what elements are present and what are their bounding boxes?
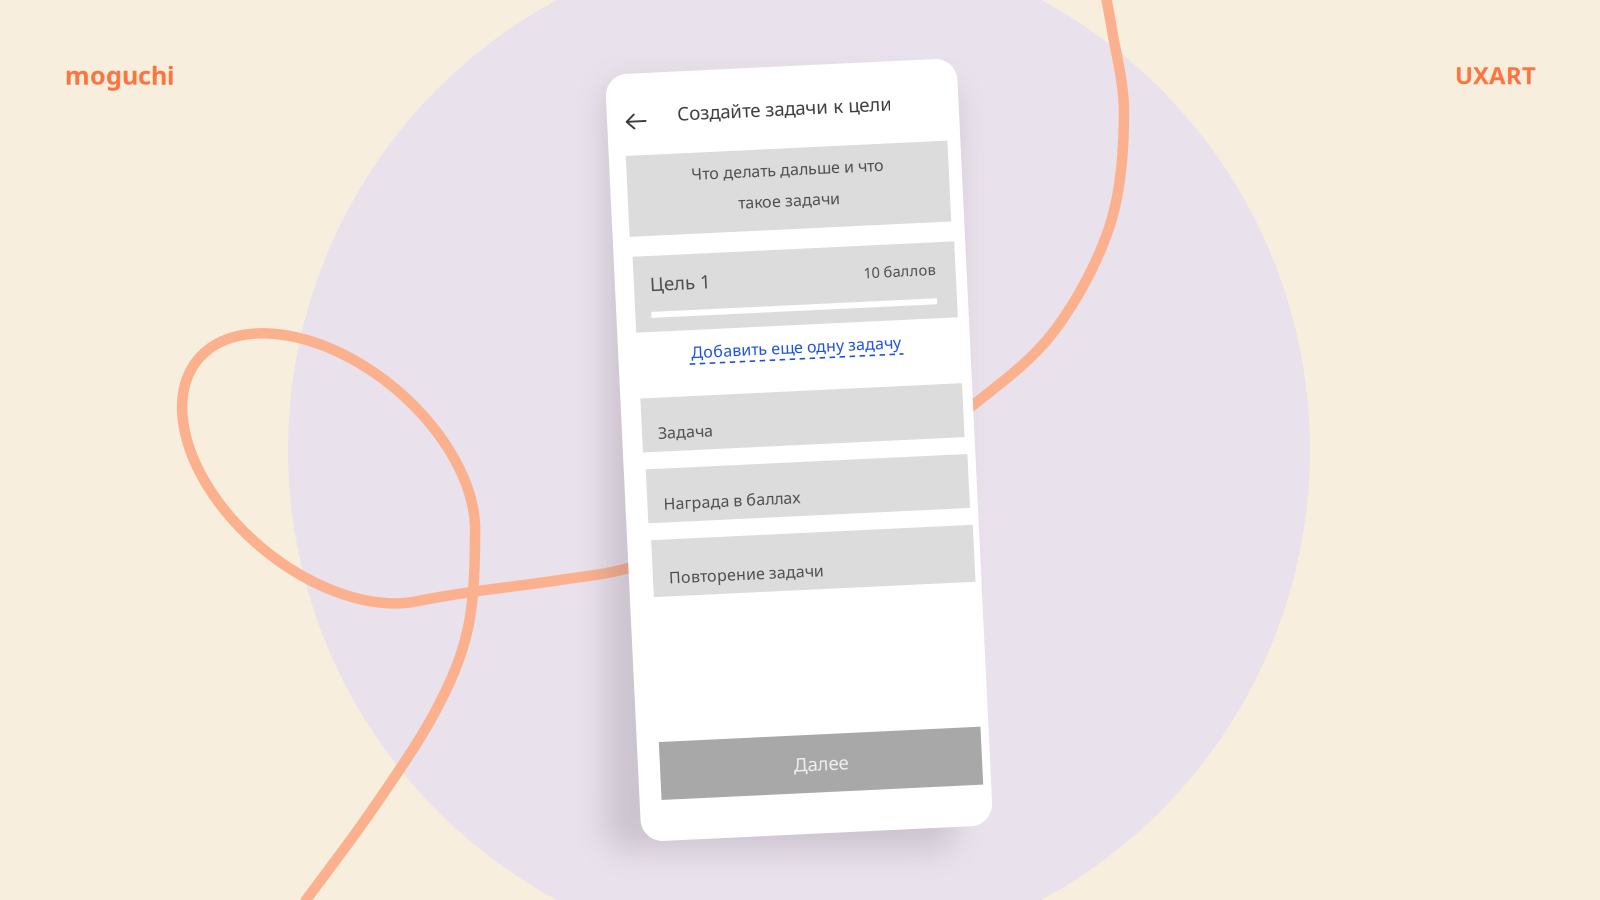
staticText: moguchi — [65, 58, 175, 92]
staticText: Создайте задачи к цели — [693, 96, 908, 120]
button[interactable]: Повторение задачи — [647, 533, 969, 590]
staticText: UXART — [1455, 59, 1536, 91]
button[interactable]: Добавить еще одну задачу — [640, 338, 962, 372]
staticText: такое задачи — [750, 189, 852, 211]
button[interactable]: Далее — [645, 735, 967, 793]
button[interactable]: Награда в баллах — [645, 462, 967, 516]
staticText: 10 баллов — [872, 266, 944, 286]
staticText: Повторение задачи — [663, 560, 818, 582]
staticText: Далее — [778, 752, 833, 776]
staticText: Добавить еще одну задачу — [696, 336, 906, 358]
staticText: Цель 1 — [658, 265, 719, 289]
staticText: Что делать дальше и что — [704, 158, 897, 180]
button[interactable]: Задача — [643, 391, 965, 445]
button[interactable]: Назад — [637, 99, 667, 129]
staticText: Задача — [659, 415, 714, 437]
staticText: Награда в баллах — [661, 486, 798, 508]
